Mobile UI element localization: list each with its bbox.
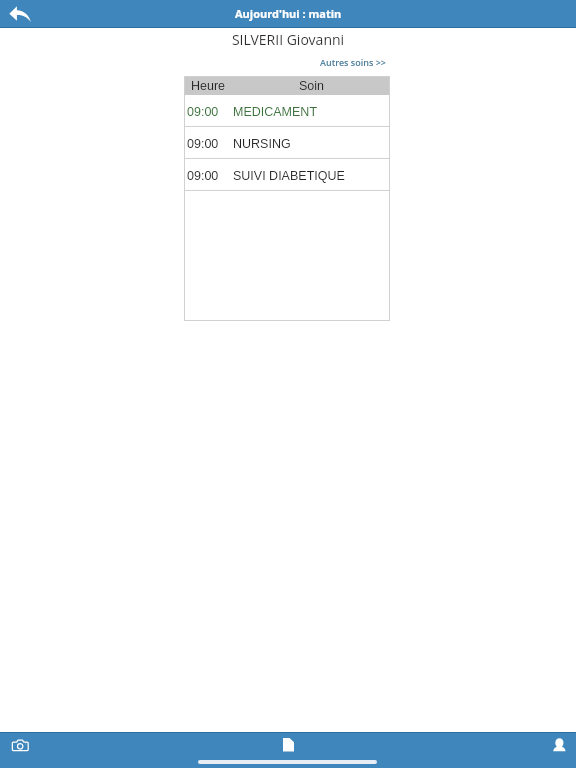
button[interactable]: 09:00 [184,159,390,191]
button[interactable]: Camera [5,732,35,758]
staticText: Aujourd'hui : matin [235,6,342,21]
staticText: 09:00 [187,105,233,119]
staticText: SILVERII Giovanni [0,30,576,49]
staticText: MEDICAMENT [233,105,318,119]
button[interactable]: 09:00 [184,95,390,127]
button[interactable]: Autres soins >> [316,53,390,71]
staticText: NURSING [233,137,291,151]
staticText: SUIVI DIABETIQUE [233,169,345,183]
staticText: 09:00 [187,137,233,151]
staticText: Soin [232,79,391,93]
button[interactable]: 09:00 [184,127,390,159]
staticText: 09:00 [187,169,233,183]
staticText: Autres soins >> [320,56,386,68]
button[interactable]: Documents [277,732,299,758]
staticText: Heure [191,79,231,93]
button[interactable]: Back [0,0,38,28]
button[interactable]: Profile [546,732,572,758]
